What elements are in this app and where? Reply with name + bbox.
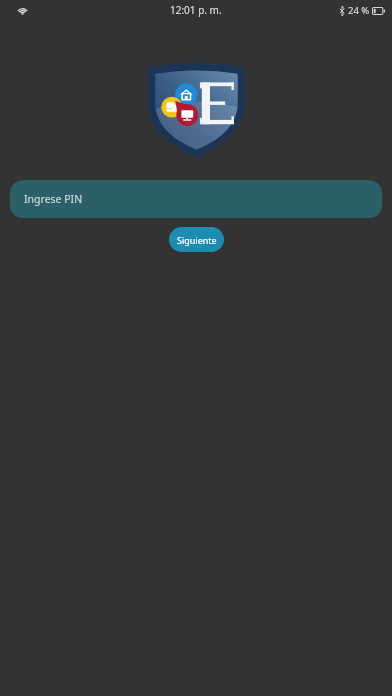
- staticText: Siguiente: [177, 234, 217, 246]
- staticText: 12:01 p. m.: [170, 3, 222, 17]
- staticText: 24 %: [348, 4, 370, 17]
- button[interactable]: Ingrese PIN: [10, 180, 382, 218]
- staticText: Ingrese PIN: [24, 192, 83, 206]
- button[interactable]: Siguiente: [169, 227, 224, 252]
